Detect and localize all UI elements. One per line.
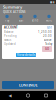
staticText: Balance — [4, 30, 14, 34]
button[interactable]: Recents — [41, 91, 51, 100]
button[interactable]: CONTINUE — [2, 81, 54, 89]
staticText: QUICK ACTIONS — [3, 10, 25, 14]
staticText: 20.00 — [43, 34, 52, 38]
staticText: Send — [31, 19, 38, 22]
button[interactable]: Scan — [14, 14, 28, 23]
staticText: ACCOUNT — [4, 26, 18, 29]
staticText: Summary — [3, 4, 22, 10]
staticText: GO — [45, 47, 49, 51]
staticText: Edit — [47, 26, 52, 29]
staticText: 1,250.00 — [38, 30, 52, 34]
button[interactable]: More — [42, 14, 56, 23]
staticText: Active — [44, 38, 52, 42]
button[interactable]: Send — [28, 14, 42, 23]
button[interactable]: Back — [5, 91, 15, 100]
staticText: Updated — [4, 42, 16, 46]
staticText: Today — [45, 42, 52, 46]
staticText: More — [45, 19, 52, 22]
staticText: CONTINUE — [18, 82, 37, 88]
staticText: Status — [4, 38, 11, 42]
button[interactable]: View details — [16, 53, 36, 57]
staticText: ▮▮ ▮ — [50, 0, 54, 3]
button[interactable]: Home — [23, 91, 33, 100]
staticText: Scan — [18, 19, 23, 22]
staticText: Pending — [4, 34, 17, 38]
staticText: ◀ — [8, 93, 11, 98]
staticText: View details — [17, 53, 35, 57]
staticText: Pay — [5, 19, 9, 22]
button[interactable]: Pay — [0, 14, 14, 23]
